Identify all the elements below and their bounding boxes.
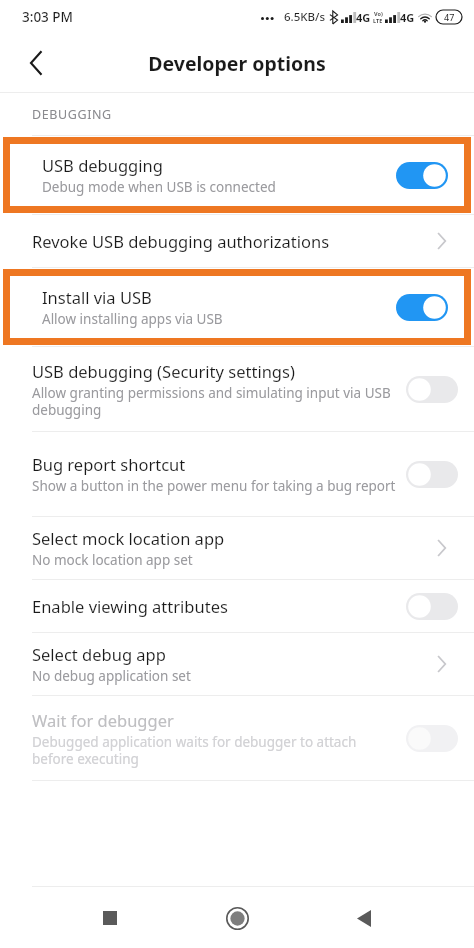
- button[interactable]: Toggle off: [406, 593, 458, 620]
- button[interactable]: Bug report shortcut: [0, 432, 474, 516]
- staticText: Debug mode when USB is connected: [42, 178, 276, 196]
- button[interactable]: USB debugging: [10, 144, 464, 206]
- button[interactable]: Recent apps: [88, 896, 132, 940]
- staticText: 6.5KB/s: [284, 9, 326, 25]
- button[interactable]: Toggle on: [396, 162, 448, 189]
- staticText: Show a button in the power menu for taki…: [32, 477, 396, 495]
- staticText: Enable viewing attributes: [32, 595, 228, 617]
- button[interactable]: Select mock location app: [0, 517, 474, 579]
- staticText: No mock location app set: [32, 551, 193, 569]
- staticText: Install via USB: [42, 286, 152, 308]
- staticText: USB debugging: [42, 154, 163, 176]
- button[interactable]: Install via USB: [10, 276, 464, 338]
- staticText: USB debugging (Security settings): [32, 360, 295, 382]
- staticText: Wait for debugger: [32, 709, 174, 731]
- staticText: 47: [444, 11, 455, 23]
- button[interactable]: Select debug app: [0, 633, 474, 695]
- staticText: Select debug app: [32, 643, 166, 665]
- button[interactable]: Toggle on: [396, 294, 448, 321]
- staticText: LTE: [373, 17, 383, 24]
- button[interactable]: Back: [14, 41, 58, 85]
- staticText: Allow installing apps via USB: [42, 310, 223, 328]
- staticText: DEBUGGING: [32, 106, 112, 123]
- button[interactable]: Wait for debugger: [0, 696, 474, 780]
- button[interactable]: Toggle off: [406, 461, 458, 488]
- staticText: Bug report shortcut: [32, 453, 186, 475]
- button[interactable]: Enable viewing attributes: [0, 580, 474, 632]
- button[interactable]: Home: [215, 896, 259, 940]
- button[interactable]: Back: [342, 896, 386, 940]
- staticText: Allow granting permissions and simulatin…: [32, 384, 396, 419]
- button[interactable]: Toggle off: [406, 376, 458, 403]
- staticText: Developer options: [148, 50, 326, 77]
- staticText: Revoke USB debugging authorizations: [32, 230, 330, 252]
- staticText: Debugged application waits for debugger …: [32, 733, 396, 768]
- button[interactable]: Toggle off: [406, 725, 458, 752]
- button[interactable]: Revoke USB debugging authorizations: [0, 215, 474, 267]
- staticText: Vo): [374, 10, 383, 17]
- staticText: No debug application set: [32, 667, 191, 685]
- staticText: 4G: [356, 10, 371, 25]
- staticText: 4G: [400, 10, 415, 25]
- staticText: Select mock location app: [32, 527, 225, 549]
- staticText: 3:03 PM: [22, 8, 73, 26]
- button[interactable]: USB debugging (Security settings): [0, 347, 474, 431]
